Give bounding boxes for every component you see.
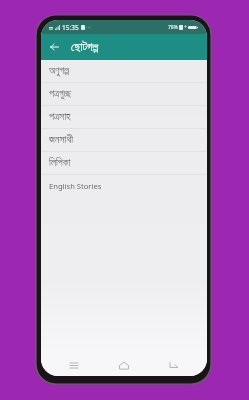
staticText: লিপিকা [49, 158, 71, 168]
staticText: পত্রগুচ্ছ [49, 89, 72, 99]
button[interactable]: অণুগল্প [41, 60, 207, 82]
button[interactable]: Back [41, 34, 67, 60]
staticText: English Stories [49, 181, 102, 191]
button[interactable]: জনসাথী [41, 129, 207, 151]
button[interactable]: পত্রসাহ [41, 106, 207, 128]
staticText: 78% [168, 24, 178, 31]
staticText: ছোটগল্প [71, 42, 99, 53]
button[interactable]: Home [117, 354, 131, 376]
staticText: জনসাথী [49, 135, 73, 145]
staticText: + [184, 24, 187, 31]
button[interactable]: Recents [67, 354, 81, 376]
button[interactable]: English Stories [41, 175, 207, 197]
button[interactable]: লিপিকা [41, 152, 207, 174]
button[interactable]: পত্রগুচ্ছ [41, 83, 207, 105]
staticText: পত্রসাহ [49, 112, 71, 122]
staticText: অণুগল্প [49, 66, 70, 76]
staticText: 15:35 [62, 23, 79, 32]
button[interactable]: Back [167, 354, 181, 376]
